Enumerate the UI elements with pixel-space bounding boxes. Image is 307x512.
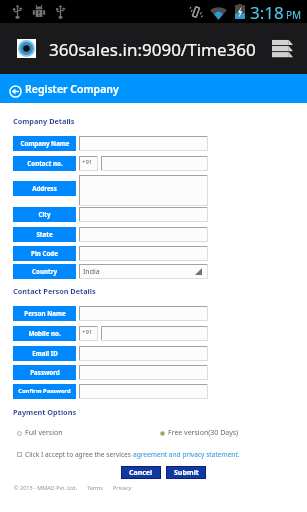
staticText: Pin Code (31, 249, 58, 257)
button[interactable]: Submit (167, 467, 205, 478)
button[interactable]: Person Name (13, 306, 76, 321)
staticText: +91 (82, 158, 93, 166)
button[interactable]: Email ID (13, 346, 76, 361)
button[interactable]: City (13, 207, 76, 222)
staticText: Payment Options (13, 407, 77, 417)
button[interactable] (79, 207, 208, 222)
button[interactable] (79, 365, 208, 380)
staticText: City (38, 210, 51, 218)
button[interactable] (101, 326, 208, 341)
staticText: Company Details (13, 116, 75, 126)
button[interactable]: Country (13, 264, 76, 279)
button[interactable]: Register Company (0, 74, 307, 103)
staticText: © 2013 - MMAD Pvt. Ltd. (14, 484, 77, 491)
button[interactable]: Password (13, 365, 76, 380)
staticText: Confirm Password (18, 387, 71, 395)
button[interactable]: Pin Code (13, 246, 76, 261)
staticText: Cancel (129, 468, 153, 478)
button[interactable]: Free version(30 Days) (160, 428, 239, 438)
staticText: Contact no. (27, 159, 63, 167)
staticText: Password (30, 368, 60, 376)
staticText: Email ID (32, 349, 58, 357)
button[interactable] (79, 227, 208, 242)
staticText: Submit (174, 468, 199, 478)
button[interactable] (79, 246, 208, 261)
staticText: Full version (25, 428, 63, 438)
staticText: Mobile no. (28, 329, 61, 337)
button[interactable] (79, 306, 208, 321)
button[interactable] (79, 175, 208, 206)
staticText: PM (286, 8, 302, 22)
button[interactable] (101, 156, 208, 171)
button[interactable] (79, 346, 208, 361)
button[interactable] (79, 384, 208, 399)
staticText: State (36, 230, 53, 238)
staticText: Free version(30 Days) (168, 428, 239, 438)
button[interactable] (79, 156, 98, 171)
button[interactable] (79, 326, 98, 341)
staticText: +91 (82, 328, 93, 336)
staticText: Click I accept to agree the services (25, 450, 133, 459)
staticText: India (83, 267, 100, 277)
button[interactable]: Mobile no. (13, 326, 76, 341)
staticText: Country (32, 267, 57, 275)
button[interactable]: State (13, 227, 76, 242)
staticText: 3:18 (250, 1, 284, 24)
staticText: Register Company (25, 82, 119, 96)
button[interactable]: India (79, 264, 208, 279)
button[interactable]: Cancel (122, 467, 160, 478)
button[interactable]: Address (13, 181, 76, 196)
button[interactable]: Company Name (13, 136, 76, 151)
staticText: Company Name (20, 139, 70, 147)
staticText: Contact Person Details (13, 286, 96, 296)
button[interactable]: Contact no. (13, 156, 76, 171)
button[interactable]: Full version (17, 428, 63, 438)
staticText: Person Name (24, 309, 66, 317)
staticText: Address (32, 184, 57, 192)
staticText: agreement and privacy statement. (133, 450, 240, 459)
button[interactable]: Click I accept to agree the services (17, 449, 240, 459)
button[interactable]: Privacy (113, 484, 132, 491)
button[interactable] (79, 136, 208, 151)
button[interactable]: Tabs (272, 39, 293, 58)
button[interactable]: Terms (87, 484, 103, 491)
staticText: 360sales.in:9090/Time360 (49, 38, 256, 61)
button[interactable]: Confirm Password (13, 384, 76, 399)
